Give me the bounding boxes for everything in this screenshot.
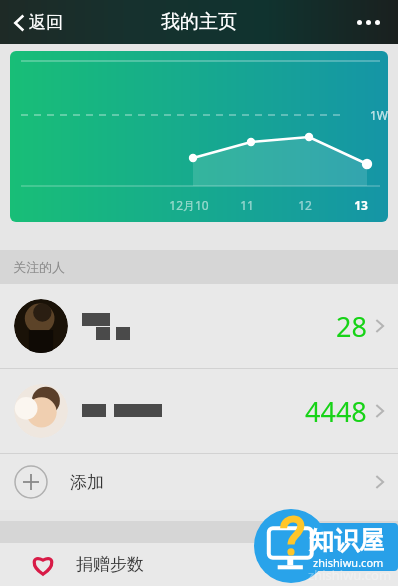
button[interactable]: More options [353,10,384,35]
staticText: 返回 [29,12,63,33]
staticText: 13 [334,197,388,213]
staticText: 11 [218,197,276,213]
button[interactable]: 1W [10,51,388,222]
staticText: 12 [276,197,334,213]
staticText: 4448 [305,393,367,430]
staticText: 知识屋 [309,525,384,556]
staticText: 1W [370,107,388,123]
staticText: zhishiwu.com [308,566,392,584]
staticText: 我的主页 [161,10,237,34]
button[interactable]: 28 [0,284,398,368]
staticText: 28 [336,308,367,345]
staticText: zhishiwu.com [313,555,384,570]
button[interactable]: 添加 [0,454,398,510]
staticText: 关注的人 [13,259,65,275]
button[interactable]: 4448 [0,369,398,453]
button[interactable]: 捐赠步数 [0,543,398,586]
button[interactable]: 返回 [10,6,67,39]
staticText: 添加 [70,472,104,493]
staticText: 捐赠步数 [76,554,144,575]
staticText: 12月10 [160,197,218,213]
